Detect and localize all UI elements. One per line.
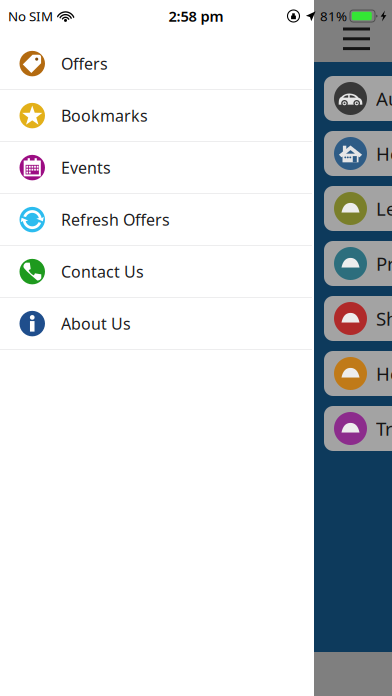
button[interactable]: Travel: [324, 406, 392, 451]
button[interactable]: Events: [0, 142, 312, 194]
staticText: Refresh Offers: [61, 209, 170, 230]
button[interactable]: Bookmarks: [0, 90, 312, 142]
button[interactable]: Professional: [324, 241, 392, 286]
button[interactable]: Leisure: [324, 186, 392, 231]
staticText: Bookmarks: [61, 105, 148, 126]
staticText: 81%: [320, 7, 347, 25]
button[interactable]: Offers: [0, 38, 312, 90]
button[interactable]: Holidays: [324, 351, 392, 396]
button[interactable]: House & Home: [324, 131, 392, 176]
staticText: Holidays: [376, 361, 392, 386]
staticText: Professional: [376, 251, 392, 276]
button[interactable]: About Us: [0, 298, 312, 350]
button[interactable]: Shopping: [324, 296, 392, 341]
staticText: Automotive: [376, 86, 392, 111]
button[interactable]: Refresh Offers: [0, 194, 312, 246]
staticText: House & Home: [376, 141, 392, 166]
staticText: 2:58 pm: [168, 6, 223, 26]
button[interactable]: Contact Us: [0, 246, 312, 298]
staticText: Contact Us: [61, 261, 144, 282]
button[interactable]: Automotive: [324, 76, 392, 121]
staticText: Travel: [376, 416, 392, 441]
staticText: Shopping: [376, 306, 392, 331]
staticText: About Us: [61, 313, 131, 334]
staticText: Offers: [61, 53, 108, 74]
staticText: Events: [61, 157, 111, 178]
staticText: Leisure: [376, 196, 392, 221]
staticText: No SIM: [8, 7, 53, 25]
button[interactable]: Menu: [335, 0, 378, 62]
